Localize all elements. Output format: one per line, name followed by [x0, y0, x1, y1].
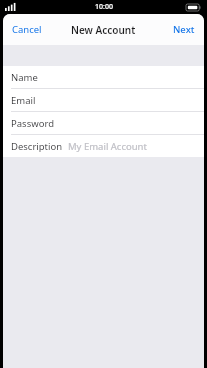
staticText: 10:00	[95, 2, 113, 12]
button[interactable]: Next	[164, 18, 204, 41]
staticText: My Email Account	[68, 140, 147, 153]
button[interactable]: Description	[3, 135, 204, 157]
staticText: Password	[11, 117, 54, 130]
button[interactable]: Cancel	[3, 18, 51, 41]
staticText: Name	[11, 71, 38, 84]
staticText: Cancel	[12, 23, 42, 36]
button[interactable]: Password	[3, 112, 204, 134]
button[interactable]: Name	[3, 66, 204, 88]
staticText: New Account	[71, 23, 136, 37]
staticText: Email	[11, 94, 36, 107]
staticText: Next	[173, 23, 195, 36]
staticText: Description	[11, 140, 63, 153]
button[interactable]: Email	[3, 89, 204, 111]
